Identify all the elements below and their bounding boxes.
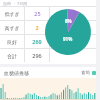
button[interactable]: 低すぎ [0,7,100,20]
button[interactable]: 血糖 ・ 7日間 [0,0,100,6]
staticText: 296 [32,52,42,59]
staticText: 血糖値推移 [4,70,29,76]
button[interactable]: 高すぎ [0,21,100,34]
other: 血糖値の割合 円グラフ [45,9,91,55]
button[interactable]: 血糖値推移 [0,67,100,78]
button[interactable]: 凡例 [92,71,96,75]
button[interactable]: 良好 [0,35,100,48]
button[interactable]: 合計 [0,49,100,62]
staticText: 2 [35,24,39,31]
staticText: 269 [32,38,42,45]
staticText: 食前 [81,70,90,76]
staticText: 良好 [7,39,17,45]
staticText: 合計 [7,53,17,59]
staticText: 91% [63,36,73,42]
other: 血糖値推移 棒グラフ [0,78,100,100]
staticText: 25 [34,10,41,17]
staticText: 低すぎ [4,11,20,17]
staticText: 血糖 ・ 7日間 [3,1,28,6]
staticText: 高すぎ [4,25,20,31]
staticText: 8% [65,18,72,24]
